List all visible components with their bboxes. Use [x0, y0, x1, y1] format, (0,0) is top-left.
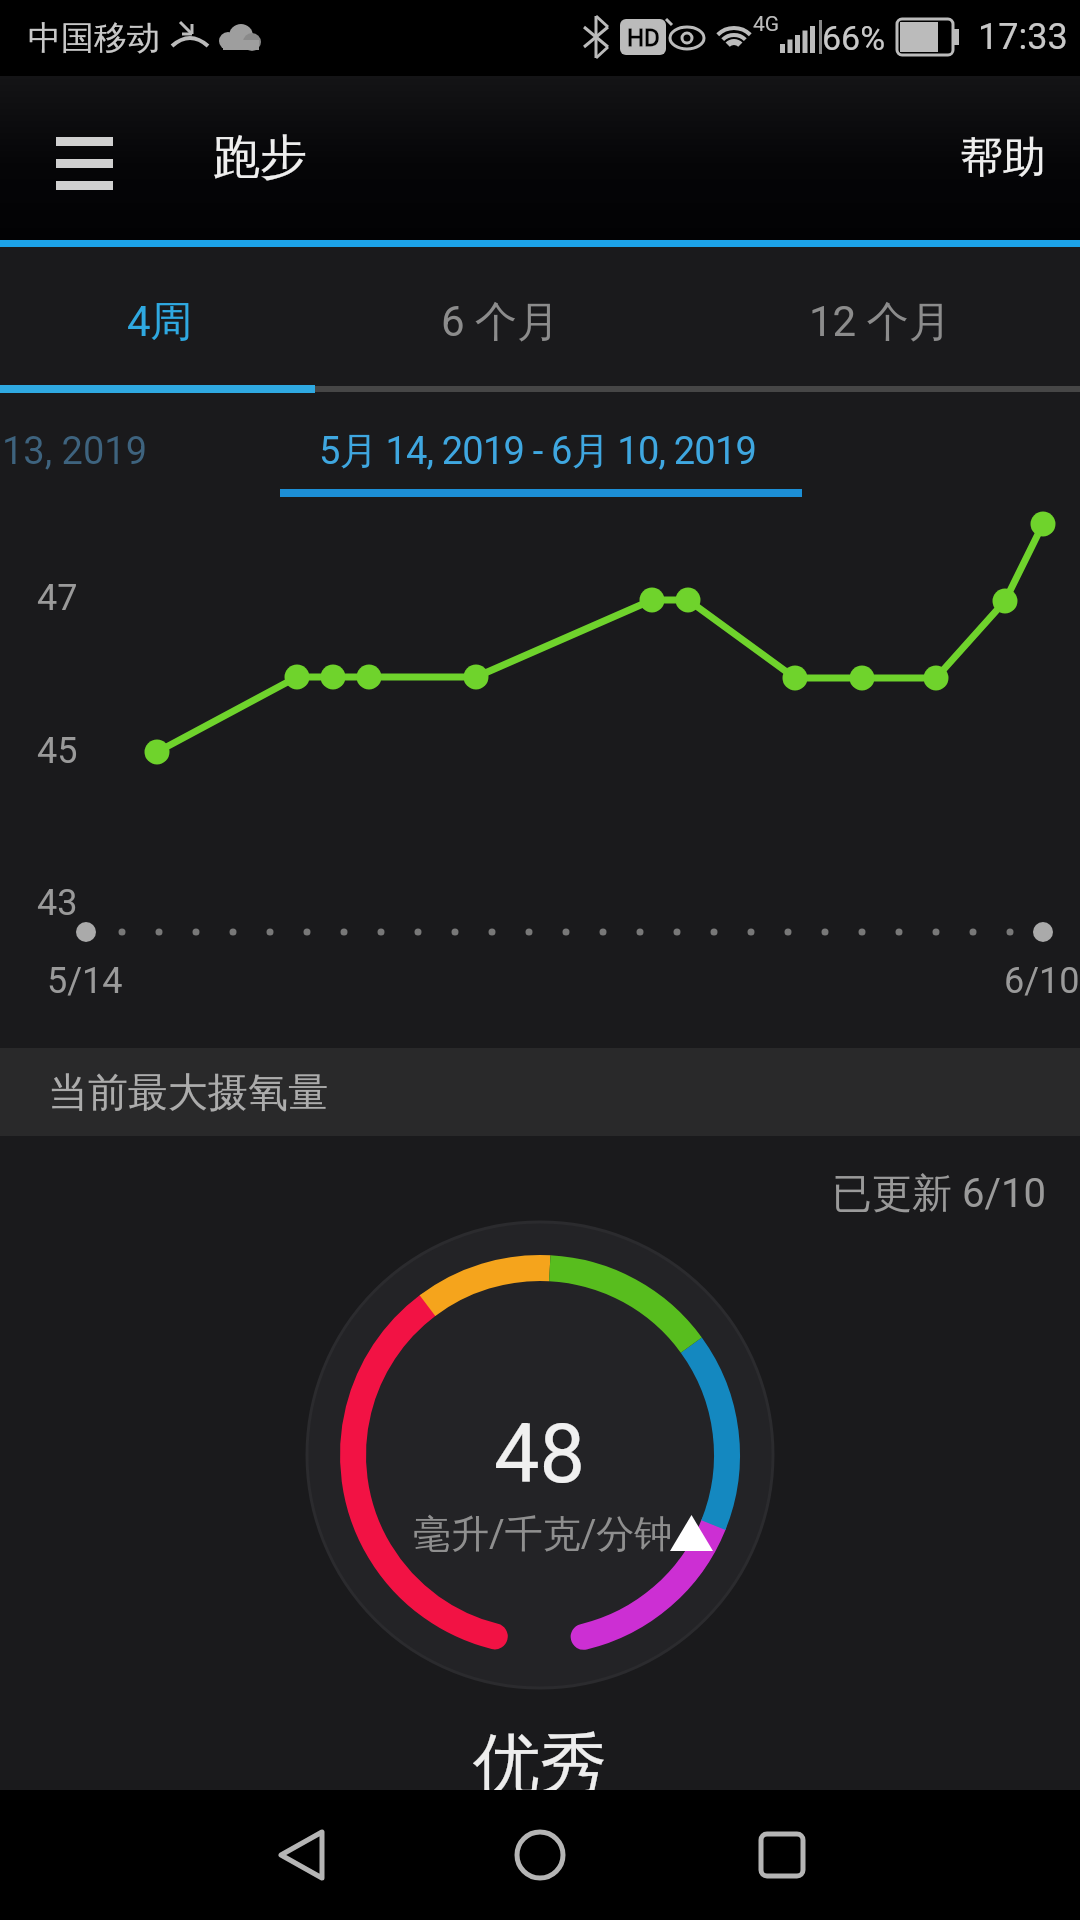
staticText: 帮助: [960, 131, 1046, 185]
staticText: 中国移动: [28, 17, 160, 59]
button[interactable]: [46, 122, 122, 194]
staticText: 优秀: [473, 1722, 607, 1806]
staticText: HD: [627, 24, 660, 52]
button[interactable]: 帮助: [960, 131, 1046, 185]
staticText: 12 个月: [809, 296, 951, 349]
staticText: 48: [494, 1407, 586, 1502]
staticText: 13, 2019: [2, 429, 148, 474]
staticText: 66%: [822, 18, 886, 58]
staticText: 当前最大摄氧量: [48, 1067, 328, 1117]
button[interactable]: [490, 1805, 590, 1905]
staticText: 45: [37, 730, 78, 772]
staticText: 5月 14, 2019 - 6月 10, 2019: [319, 427, 757, 475]
button[interactable]: 5月 14, 2019 - 6月 10, 2019: [319, 427, 757, 475]
staticText: 47: [37, 577, 78, 619]
button[interactable]: 4周: [40, 282, 280, 362]
staticText: 17:33: [978, 16, 1068, 58]
staticText: 6 个月: [441, 296, 560, 349]
button[interactable]: [252, 1805, 352, 1905]
staticText: 跑步: [213, 128, 307, 187]
button[interactable]: [732, 1805, 832, 1905]
staticText: 43: [37, 882, 78, 924]
staticText: 已更新 6/10: [832, 1168, 1046, 1218]
button[interactable]: 12 个月: [760, 282, 1000, 362]
staticText: 6/10: [1004, 960, 1080, 1002]
button[interactable]: 6 个月: [380, 282, 620, 362]
staticText: 4G: [753, 12, 780, 37]
staticText: 毫升/千克/分钟: [413, 1510, 673, 1558]
staticText: 4周: [127, 296, 193, 349]
staticText: 5/14: [47, 960, 123, 1002]
